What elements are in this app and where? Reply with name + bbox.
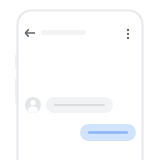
- button[interactable]: More options: [122, 27, 134, 41]
- button[interactable]: Received message: [46, 97, 113, 113]
- button[interactable]: Sent message: [80, 124, 136, 141]
- button[interactable]: Contact avatar: [25, 97, 41, 113]
- button[interactable]: Back: [23, 26, 37, 40]
